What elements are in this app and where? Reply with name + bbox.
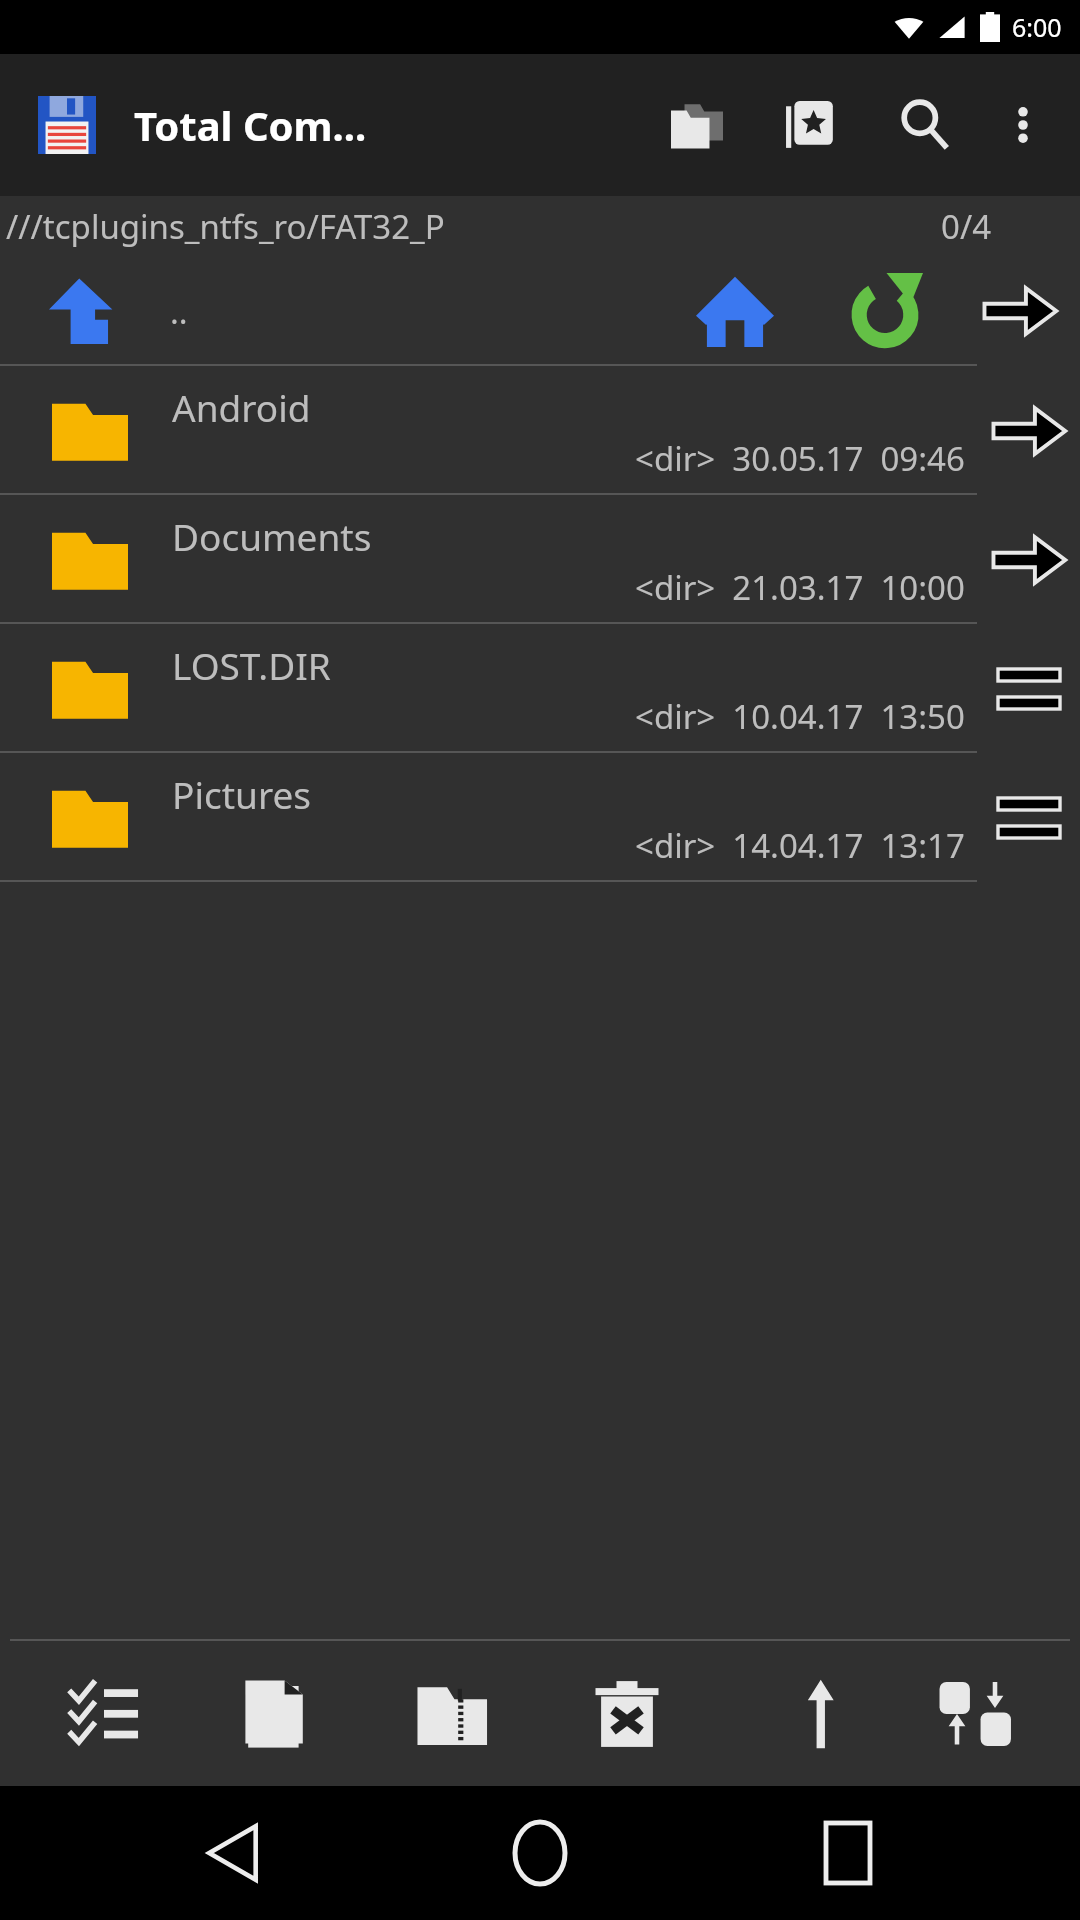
button[interactable]: Pictures [0,753,977,882]
button[interactable]: Open panel [960,256,1080,366]
button[interactable]: More options [984,86,1062,164]
staticText: Android [172,382,311,432]
button[interactable]: Bookmarks [768,82,854,168]
button[interactable]: Search [882,82,968,168]
button[interactable]: Delete [557,1644,697,1784]
button[interactable]: Details [977,624,1080,753]
staticText: Total Com... [134,98,367,152]
button[interactable]: LOST.DIR [0,624,977,753]
staticText: <dir> 21.03.17 10:00 [635,565,965,610]
button[interactable]: Android [0,366,977,495]
button[interactable]: Open [977,495,1080,624]
button[interactable]: Sort [731,1644,871,1784]
button[interactable]: Details [977,753,1080,882]
button[interactable]: New file [209,1644,349,1784]
staticText: Documents [172,511,372,561]
button[interactable]: Select files [34,1644,174,1784]
button[interactable]: Move [906,1644,1046,1784]
button[interactable]: Home [465,1786,615,1920]
staticText: 0/4 [941,204,992,249]
button[interactable]: Zip [383,1644,523,1784]
button[interactable]: Back [158,1786,308,1920]
button[interactable]: Documents [0,495,977,624]
button[interactable]: Open [977,366,1080,495]
staticText: 6:00 [1012,10,1062,44]
staticText: LOST.DIR [172,640,331,690]
button[interactable]: Folders [654,82,740,168]
button[interactable]: Recent apps [773,1786,923,1920]
staticText: <dir> 10.04.17 13:50 [635,694,965,739]
staticText: <dir> 14.04.17 13:17 [635,823,965,868]
staticText: .. [170,289,188,334]
staticText: <dir> 30.05.17 09:46 [635,436,965,481]
button[interactable]: Home [660,256,810,366]
button[interactable]: Refresh [810,256,960,366]
staticText: ///tcplugins_ntfs_ro/FAT32_P [6,204,445,249]
button[interactable]: Up one level [0,256,170,366]
button[interactable]: App icon [36,94,98,156]
staticText: Pictures [172,769,312,819]
